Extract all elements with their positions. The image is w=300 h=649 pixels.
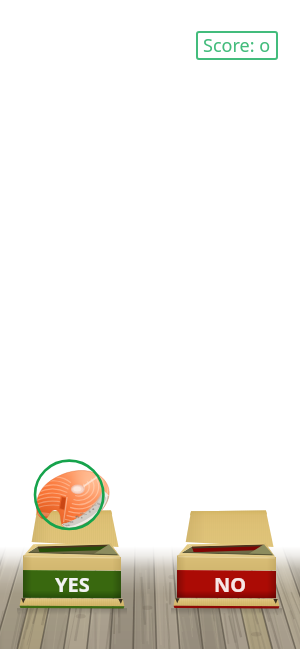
button[interactable]: Score: o [196, 31, 278, 60]
staticText: Score: o [203, 33, 271, 58]
button[interactable]: NO [183, 570, 278, 598]
staticText: YES [55, 571, 90, 598]
button[interactable]: Salmon food item [34, 458, 112, 532]
button[interactable]: YES [25, 570, 120, 598]
staticText: NO [214, 571, 247, 598]
